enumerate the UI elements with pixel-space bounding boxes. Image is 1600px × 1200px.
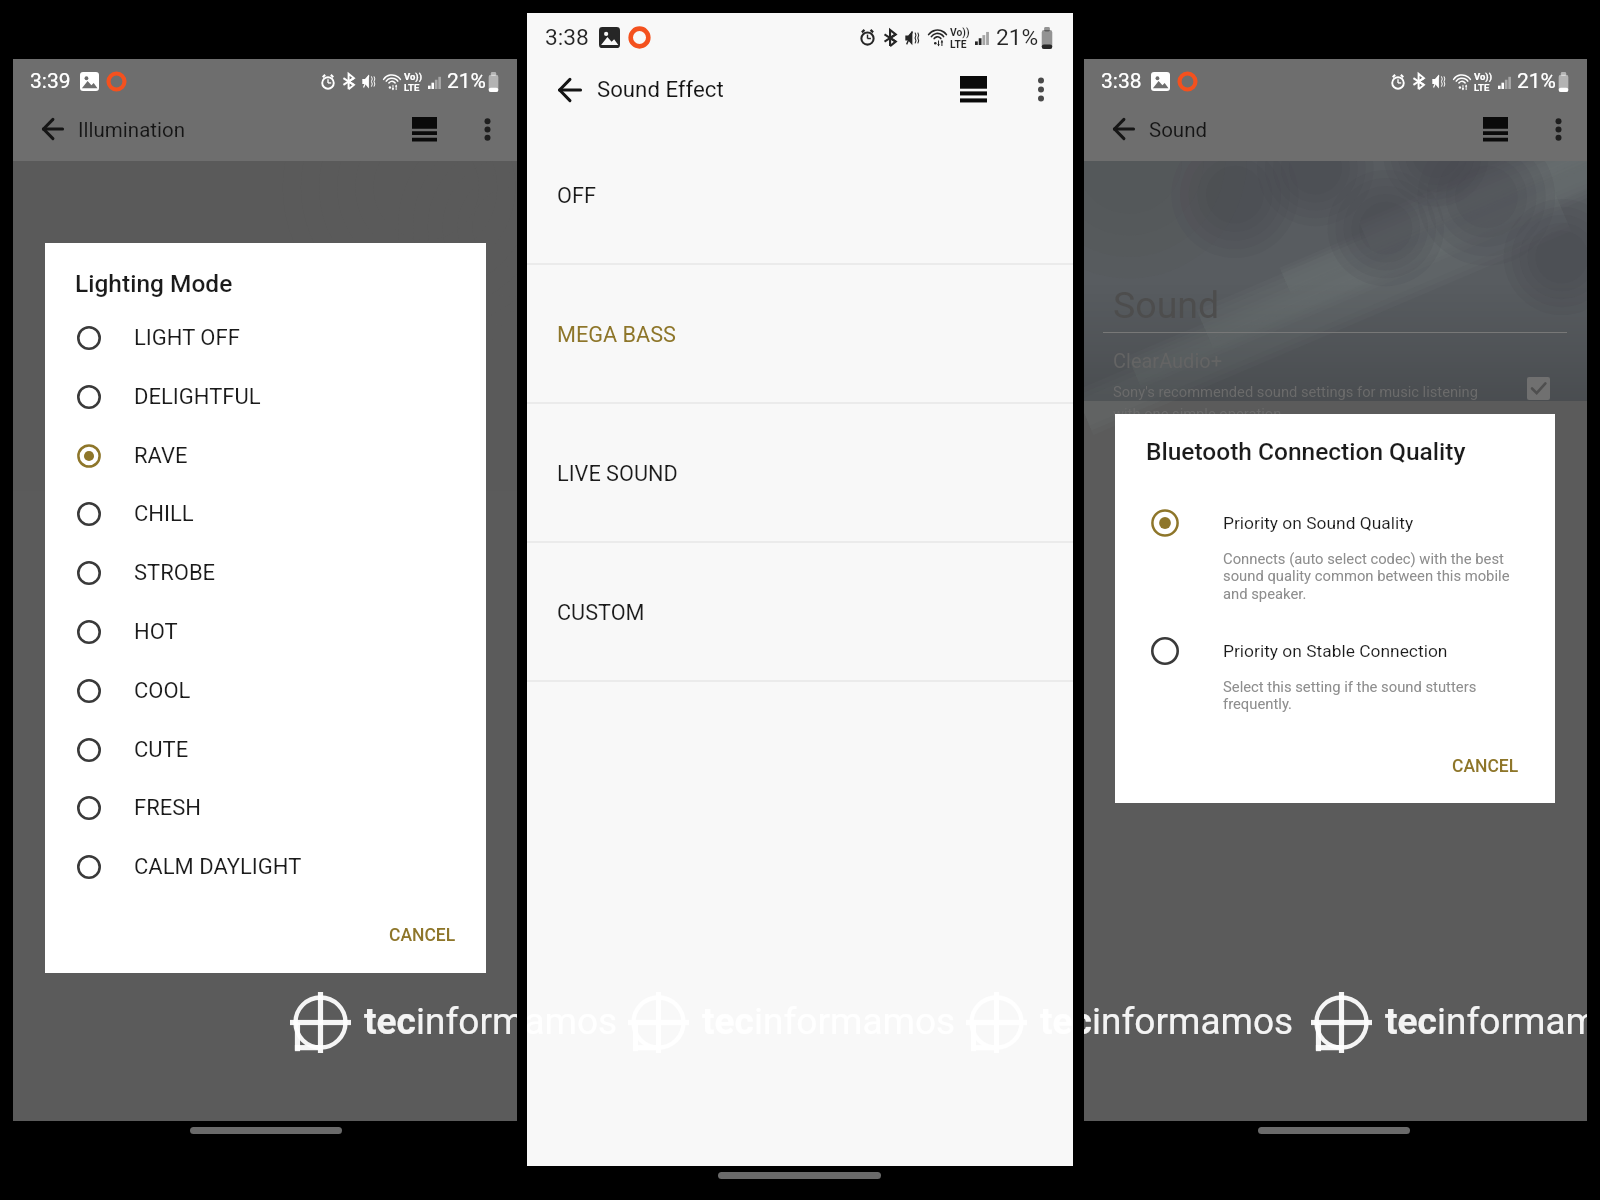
staticText: Priority on Stable Connection: [1223, 641, 1448, 661]
staticText: DELIGHTFUL: [134, 384, 261, 410]
staticText: CHILL: [134, 501, 194, 527]
staticText: Sound: [1149, 118, 1208, 142]
staticText: CANCEL: [389, 925, 456, 946]
button[interactable]: Layout: [1472, 106, 1518, 152]
staticText: 21%: [447, 69, 486, 94]
staticText: LIVE SOUND: [557, 461, 678, 486]
staticText: CUTE: [134, 737, 189, 763]
staticText: CALM DAYLIGHT: [134, 854, 302, 880]
staticText: Lighting Mode: [75, 269, 233, 298]
button[interactable]: DELIGHTFUL: [45, 368, 486, 426]
staticText: ClearAudio+: [1113, 349, 1223, 372]
staticText: LTE: [1474, 82, 1490, 93]
button[interactable]: More options: [464, 106, 510, 152]
button[interactable]: CUTE: [45, 721, 486, 779]
staticText: Sound Effect: [597, 76, 724, 102]
button[interactable]: Back: [33, 110, 71, 148]
button[interactable]: FRESH: [45, 779, 486, 837]
button[interactable]: STROBE: [45, 544, 486, 602]
staticText: tec: [364, 1000, 416, 1043]
staticText: Priority on Sound Quality: [1223, 513, 1414, 533]
button[interactable]: CANCEL: [1431, 744, 1539, 788]
staticText: Vo)): [404, 71, 423, 82]
staticText: MEGA BASS: [557, 322, 676, 347]
staticText: STROBE: [134, 560, 216, 586]
staticText: 21%: [996, 24, 1039, 51]
staticText: informamos: [416, 1000, 517, 1043]
button[interactable]: CHILL: [45, 485, 486, 543]
staticText: LTE: [950, 38, 967, 50]
staticText: Vo)): [1474, 71, 1493, 82]
staticText: tec: [1385, 1000, 1437, 1043]
button[interactable]: ClearAudio+ on: [1527, 377, 1550, 400]
button[interactable]: ClearAudio+: [1084, 341, 1587, 431]
button[interactable]: CUSTOM: [527, 543, 1073, 682]
button[interactable]: LIVE SOUND: [527, 404, 1073, 543]
staticText: CANCEL: [1452, 756, 1519, 777]
staticText: OFF: [557, 183, 596, 208]
button[interactable]: Back: [1104, 110, 1142, 148]
button[interactable]: More options: [1016, 64, 1066, 114]
button[interactable]: More options: [1535, 106, 1581, 152]
staticText: informamos: [1437, 1000, 1587, 1043]
button[interactable]: LIGHT OFF: [45, 309, 486, 367]
button[interactable]: Layout: [948, 64, 998, 114]
button[interactable]: Layout: [401, 106, 447, 152]
staticText: HOT: [134, 619, 178, 645]
staticText: tec: [1084, 1000, 1092, 1043]
button[interactable]: Priority on Stable Connection: [1115, 637, 1555, 709]
staticText: COOL: [134, 678, 191, 704]
staticText: Sound: [1113, 283, 1220, 327]
button[interactable]: Priority on Sound Quality: [1115, 509, 1555, 599]
staticText: informamos: [1092, 1000, 1294, 1043]
staticText: tec: [1040, 1000, 1073, 1043]
staticText: CUSTOM: [557, 600, 645, 625]
staticText: 3:38: [545, 24, 589, 51]
staticText: 21%: [1517, 69, 1556, 94]
staticText: RAVE: [134, 443, 188, 469]
staticText: 3:39: [30, 69, 71, 94]
button[interactable]: Back: [549, 69, 590, 110]
staticText: LIGHT OFF: [134, 325, 240, 351]
button[interactable]: MEGA BASS: [527, 265, 1073, 404]
button[interactable]: OFF: [527, 126, 1073, 265]
staticText: Bluetooth Connection Quality: [1146, 437, 1466, 466]
button[interactable]: CALM DAYLIGHT: [45, 838, 486, 896]
staticText: Illumination: [78, 118, 185, 142]
staticText: 3:38: [1101, 69, 1142, 94]
button[interactable]: RAVE: [45, 427, 486, 485]
staticText: Select this setting if the sound stutter…: [1223, 678, 1477, 713]
button[interactable]: HOT: [45, 603, 486, 661]
button[interactable]: COOL: [45, 662, 486, 720]
staticText: Sony's recommended sound settings for mu…: [1113, 383, 1478, 423]
button[interactable]: CANCEL: [367, 913, 477, 957]
staticText: FRESH: [134, 795, 201, 821]
staticText: Vo)): [950, 26, 970, 38]
staticText: LTE: [404, 82, 420, 93]
staticText: Connects (auto select codec) with the be…: [1223, 550, 1510, 603]
